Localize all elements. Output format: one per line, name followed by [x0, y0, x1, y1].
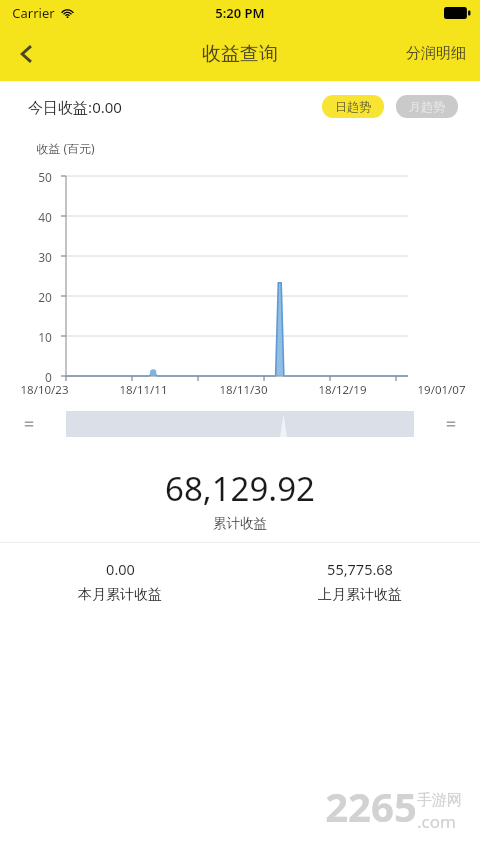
button[interactable]: 分润明细	[392, 32, 480, 75]
staticText: 上月累计收益	[318, 586, 402, 604]
staticText: 今日收益:0.00	[28, 97, 122, 117]
staticText: 10	[38, 329, 52, 345]
staticText: 68,129.92	[165, 466, 315, 511]
staticText: 手游网	[417, 791, 462, 810]
staticText: 19/01/07	[417, 382, 466, 398]
button[interactable]: Slider handle	[436, 409, 466, 439]
staticText: 55,775.68	[327, 559, 393, 579]
staticText: 2265	[325, 779, 417, 833]
staticText: 0.00	[106, 559, 135, 579]
staticText: 5:20 PM	[215, 4, 265, 22]
staticText: 累计收益	[213, 515, 267, 532]
staticText: 18/11/30	[219, 382, 268, 398]
staticText: 18/10/23	[20, 382, 69, 398]
staticText: 收益 (百元)	[36, 140, 95, 156]
staticText: 18/12/19	[318, 382, 367, 398]
staticText: 本月累计收益	[78, 586, 162, 604]
staticText: 收益查询	[202, 42, 278, 66]
button[interactable]: Date range slider	[14, 404, 466, 444]
button[interactable]: 0.00	[0, 555, 240, 608]
staticText: .com	[417, 810, 456, 833]
button[interactable]: 月趋势	[396, 95, 458, 118]
staticText: 0	[45, 369, 52, 385]
staticText: 40	[38, 209, 52, 225]
staticText: 18/11/11	[119, 382, 168, 398]
button[interactable]: 55,775.68	[240, 555, 480, 608]
button[interactable]: Back	[0, 27, 54, 81]
staticText: Carrier	[12, 4, 55, 22]
button[interactable]: 日趋势	[322, 95, 384, 118]
staticText: 20	[38, 289, 52, 305]
staticText: 30	[38, 249, 52, 265]
staticText: 50	[38, 169, 52, 185]
staticText: 分润明细	[406, 44, 466, 63]
button[interactable]: Slider handle	[14, 409, 44, 439]
staticText: 日趋势	[335, 99, 371, 114]
staticText: 月趋势	[409, 99, 445, 114]
